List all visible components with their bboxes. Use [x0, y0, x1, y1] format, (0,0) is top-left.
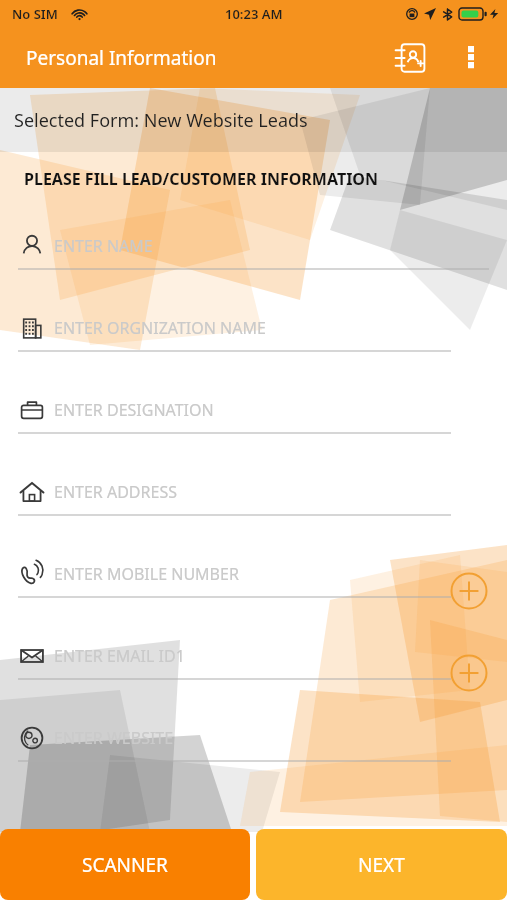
button[interactable]: Add field — [447, 569, 491, 613]
button[interactable]: ENTER WEBSITE — [18, 714, 489, 762]
staticText: No SIM — [12, 5, 58, 23]
staticText: ENTER MOBILE NUMBER — [54, 563, 239, 585]
button[interactable]: ENTER NAME — [18, 222, 489, 270]
staticText: SCANNER — [82, 852, 168, 878]
staticText: 10:23 AM — [225, 5, 283, 23]
button[interactable]: NEXT — [256, 829, 507, 900]
button[interactable]: Add field — [447, 651, 491, 695]
staticText: ENTER DESIGNATION — [54, 399, 214, 421]
staticText: ENTER ORGNIZATION NAME — [54, 317, 266, 339]
staticText: Selected Form: New Website Leads — [14, 108, 308, 133]
staticText: ENTER NAME — [54, 235, 153, 257]
staticText: ENTER EMAIL ID1 — [54, 645, 185, 667]
button[interactable]: More options — [449, 36, 493, 80]
staticText: Personal Information — [26, 45, 217, 71]
staticText: ENTER WEBSITE — [54, 727, 174, 749]
button[interactable]: ENTER MOBILE NUMBER — [18, 550, 435, 598]
button[interactable]: ENTER ORGNIZATION NAME — [18, 304, 489, 352]
button[interactable]: SCANNER — [0, 829, 250, 900]
button[interactable]: ENTER ADDRESS — [18, 468, 489, 516]
button[interactable]: Add contact — [387, 35, 433, 81]
button[interactable]: ENTER EMAIL ID1 — [18, 632, 435, 680]
staticText: PLEASE FILL LEAD/CUSTOMER INFORMATION — [24, 168, 379, 190]
button[interactable]: ENTER DESIGNATION — [18, 386, 489, 434]
staticText: ENTER ADDRESS — [54, 481, 177, 503]
staticText: NEXT — [358, 852, 405, 878]
